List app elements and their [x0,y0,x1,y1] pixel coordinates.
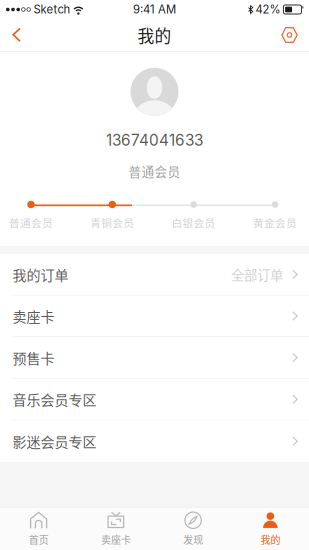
button[interactable]: 影迷会员专区 [0,420,309,462]
staticText: 9:41 AM [133,3,176,16]
button[interactable]: 我的 [232,507,309,550]
button[interactable]: 预售卡 [0,337,309,379]
staticText: 青铜会员 [90,215,134,230]
staticText: 普通会员 [128,162,180,180]
button[interactable]: 首页 [0,507,77,550]
button[interactable]: 我的订单 [0,254,309,296]
button[interactable]: Back [0,19,37,51]
staticText: 影迷会员专区 [12,431,96,451]
button[interactable]: 卖座卡 [77,507,154,550]
staticText: 42% [255,3,280,16]
button[interactable]: 卖座卡 [0,296,309,337]
staticText: 卖座卡 [12,306,54,326]
staticText: 音乐会员专区 [12,389,96,409]
button[interactable]: Settings [265,19,309,51]
staticText: 卖座卡 [101,532,131,547]
staticText: 我的 [137,23,171,47]
staticText: 首页 [29,532,49,547]
staticText: 预售卡 [12,347,54,368]
staticText: 13674041633 [106,131,203,149]
staticText: 普通会员 [9,215,53,230]
staticText: 白银会员 [172,215,216,230]
staticText: 我的订单 [12,264,68,285]
button[interactable]: 音乐会员专区 [0,379,309,420]
staticText: 黄金会员 [253,215,297,230]
staticText: 发现 [183,532,203,547]
staticText: Sketch [33,3,70,16]
button[interactable]: 发现 [154,507,232,550]
staticText: 我的 [260,532,280,547]
staticText: 全部订单 [231,265,283,284]
